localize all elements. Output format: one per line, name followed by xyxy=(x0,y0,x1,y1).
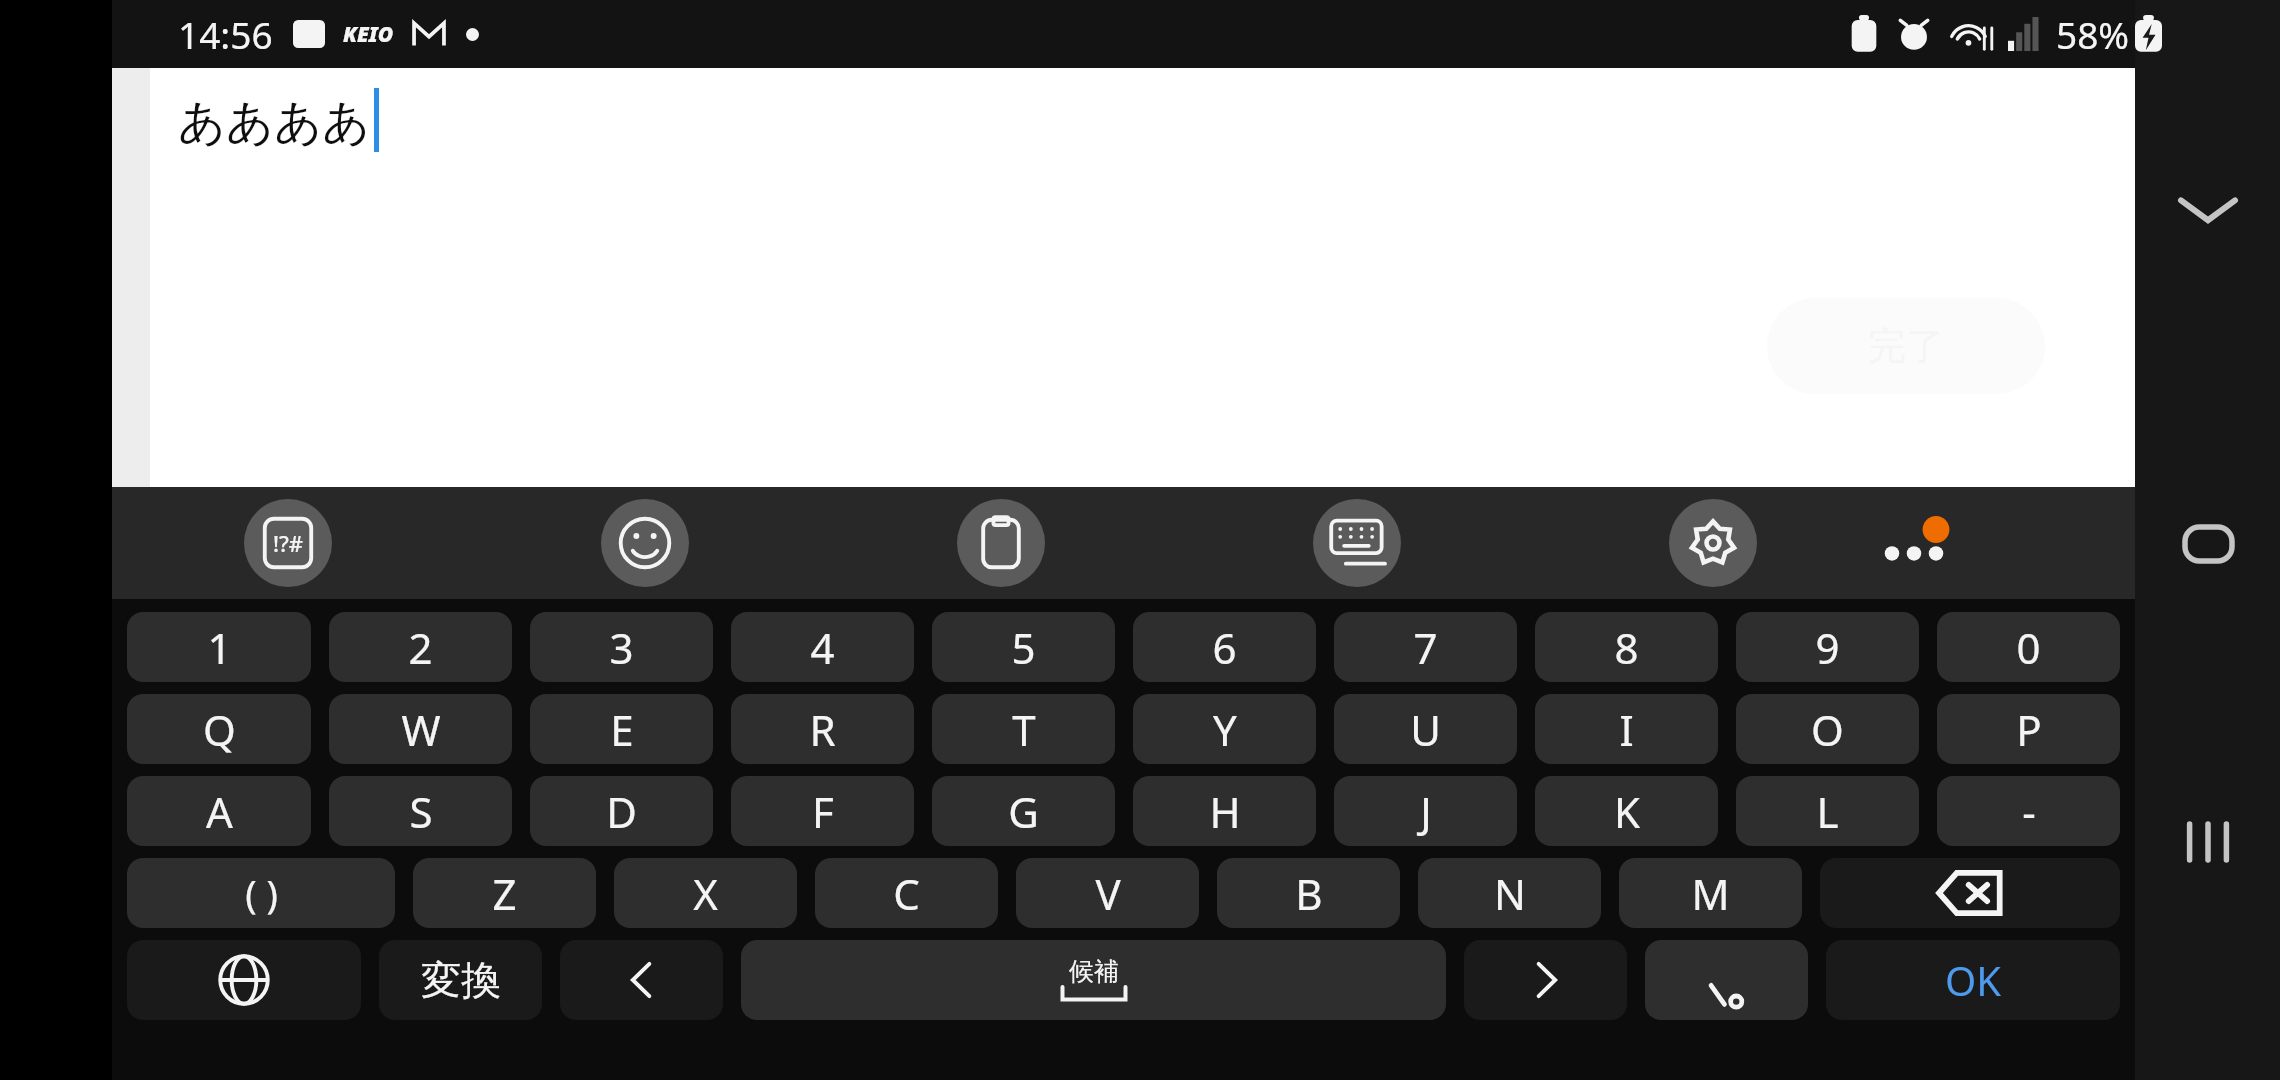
button[interactable]: 1 xyxy=(127,612,311,682)
button[interactable]: R xyxy=(731,694,914,764)
staticText: Z xyxy=(492,865,517,922)
staticText: Q xyxy=(203,701,236,758)
button[interactable]: 6 xyxy=(1133,612,1316,682)
button[interactable]: V xyxy=(1016,858,1199,928)
staticText: K xyxy=(1614,783,1640,840)
staticText: X xyxy=(693,865,718,922)
staticText: 14:56 xyxy=(178,9,273,59)
staticText: 6 xyxy=(1212,619,1237,676)
button[interactable]: Clipboard xyxy=(957,499,1045,587)
button[interactable]: C xyxy=(815,858,998,928)
button[interactable]: J xyxy=(1334,776,1517,846)
staticText: OK xyxy=(1945,953,2001,1007)
button[interactable]: 8 xyxy=(1535,612,1718,682)
button[interactable]: T xyxy=(932,694,1115,764)
button[interactable]: Home xyxy=(2150,502,2266,586)
button[interactable]: S xyxy=(329,776,512,846)
staticText: 5 xyxy=(1011,619,1036,676)
button[interactable]: X xyxy=(614,858,797,928)
staticText: 7 xyxy=(1413,619,1438,676)
button[interactable]: 候補 xyxy=(741,940,1446,1020)
button[interactable]: Move cursor right xyxy=(1464,940,1627,1020)
staticText: W xyxy=(401,701,441,758)
button[interactable]: 9 xyxy=(1736,612,1919,682)
button[interactable]: W xyxy=(329,694,512,764)
button[interactable]: Change keyboard language xyxy=(127,940,361,1020)
button[interactable]: K xyxy=(1535,776,1718,846)
button[interactable]: Backspace xyxy=(1820,858,2120,928)
staticText: 0 xyxy=(2016,619,2041,676)
staticText: 4 xyxy=(810,619,835,676)
staticText: C xyxy=(893,865,920,922)
button[interactable]: Keyboard layout xyxy=(1313,499,1401,587)
staticText: 3 xyxy=(609,619,634,676)
button[interactable]: 変換 xyxy=(379,940,542,1020)
staticText: H xyxy=(1209,783,1241,840)
button[interactable]: 5 xyxy=(932,612,1115,682)
staticText: M xyxy=(1691,865,1730,922)
staticText: KEIO xyxy=(343,20,394,49)
staticText: L xyxy=(1816,783,1839,840)
button[interactable]: H xyxy=(1133,776,1316,846)
staticText: J xyxy=(1420,783,1432,840)
staticText: R xyxy=(809,701,836,758)
button[interactable]: F xyxy=(731,776,914,846)
staticText: 候補 xyxy=(1069,956,1119,987)
button[interactable]: D xyxy=(530,776,713,846)
staticText: O xyxy=(1811,701,1844,758)
button[interactable]: 3 xyxy=(530,612,713,682)
staticText: 2 xyxy=(408,619,433,676)
button[interactable]: Hide keyboard xyxy=(2150,168,2266,252)
button[interactable]: L xyxy=(1736,776,1919,846)
staticText: P xyxy=(2016,701,2042,758)
button[interactable]: - xyxy=(1937,776,2120,846)
button[interactable]: Symbols xyxy=(244,499,332,587)
button[interactable]: G xyxy=(932,776,1115,846)
button[interactable]: B xyxy=(1217,858,1400,928)
button[interactable]: N xyxy=(1418,858,1601,928)
staticText: !?# xyxy=(273,528,304,558)
staticText: N xyxy=(1494,865,1526,922)
staticText: - xyxy=(2022,783,2036,840)
button[interactable]: 4 xyxy=(731,612,914,682)
staticText: F xyxy=(812,783,834,840)
button[interactable]: Y xyxy=(1133,694,1316,764)
staticText: V xyxy=(1095,865,1121,922)
staticText: 9 xyxy=(1815,619,1840,676)
staticText: Y xyxy=(1213,701,1237,758)
button[interactable]: E xyxy=(530,694,713,764)
button[interactable]: 2 xyxy=(329,612,512,682)
staticText: A xyxy=(206,783,233,840)
staticText: E xyxy=(610,701,634,758)
staticText: U xyxy=(1410,701,1441,758)
staticText: ああああ xyxy=(178,93,371,152)
button[interactable]: Q xyxy=(127,694,311,764)
staticText: T xyxy=(1012,701,1036,758)
staticText: D xyxy=(606,783,637,840)
button[interactable]: ( ) xyxy=(127,858,395,928)
button[interactable]: 0 xyxy=(1937,612,2120,682)
button[interactable]: Voice input xyxy=(1645,940,1808,1020)
button[interactable]: Move cursor left xyxy=(560,940,723,1020)
staticText: G xyxy=(1008,783,1039,840)
button[interactable]: Recent apps xyxy=(2150,800,2266,884)
button[interactable]: P xyxy=(1937,694,2120,764)
staticText: B xyxy=(1295,865,1323,922)
button[interactable]: U xyxy=(1334,694,1517,764)
button[interactable]: 7 xyxy=(1334,612,1517,682)
button[interactable]: Settings xyxy=(1669,499,1757,587)
button[interactable]: A xyxy=(127,776,311,846)
button[interactable]: Z xyxy=(413,858,596,928)
button[interactable]: More options xyxy=(1852,509,1972,577)
button[interactable]: O xyxy=(1736,694,1919,764)
staticText: 8 xyxy=(1614,619,1639,676)
button[interactable]: I xyxy=(1535,694,1718,764)
button[interactable]: OK xyxy=(1826,940,2120,1020)
button[interactable]: M xyxy=(1619,858,1802,928)
button[interactable]: Emoji xyxy=(601,499,689,587)
staticText: 変換 xyxy=(421,955,501,1005)
staticText: 1 xyxy=(207,619,232,676)
staticText: 58% xyxy=(2056,9,2130,59)
